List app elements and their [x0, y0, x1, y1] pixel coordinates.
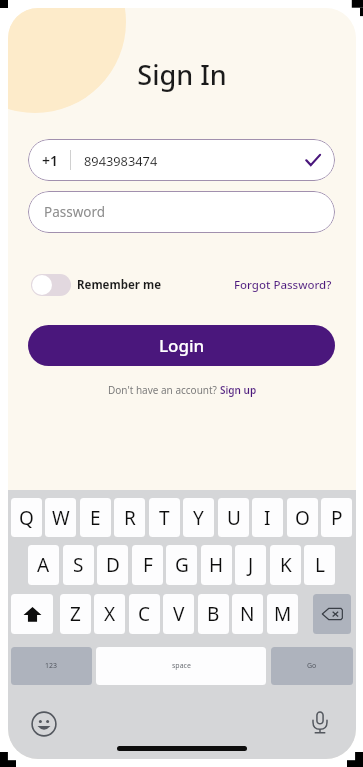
button[interactable]: Password — [28, 191, 335, 233]
staticText: E — [90, 505, 101, 531]
staticText: G — [175, 552, 189, 578]
staticText: N — [240, 601, 255, 627]
staticText: Login — [159, 334, 205, 357]
staticText: X — [104, 601, 116, 627]
button[interactable]: C — [129, 594, 160, 634]
staticText: C — [138, 601, 151, 627]
button[interactable]: N — [232, 594, 263, 634]
staticText: H — [209, 552, 224, 578]
button[interactable]: K — [270, 545, 301, 585]
staticText: Password — [44, 203, 106, 221]
button[interactable]: Go — [271, 647, 353, 685]
button[interactable]: U — [218, 498, 249, 537]
button[interactable]: P — [321, 498, 352, 537]
staticText: Y — [193, 505, 204, 531]
button[interactable]: E — [80, 498, 111, 537]
button[interactable]: M — [267, 594, 298, 634]
staticText: U — [227, 505, 241, 531]
staticText: S — [73, 552, 84, 578]
staticText: M — [274, 601, 292, 627]
button[interactable]: 123 — [11, 647, 92, 685]
staticText: Remember me — [77, 277, 162, 293]
staticText: space — [172, 661, 191, 671]
button[interactable]: I — [252, 498, 283, 537]
staticText: F — [143, 552, 153, 578]
staticText: Q — [19, 505, 34, 531]
staticText: O — [295, 505, 310, 531]
button[interactable]: space — [96, 647, 266, 685]
button[interactable]: F — [132, 545, 163, 585]
button[interactable]: Y — [183, 498, 214, 537]
staticText: +1 — [42, 151, 59, 170]
staticText: V — [173, 601, 185, 627]
button[interactable]: Emoji — [31, 711, 57, 737]
staticText: P — [331, 505, 343, 531]
button[interactable]: T — [149, 498, 180, 537]
staticText: Don't have an account? — [108, 383, 220, 397]
button[interactable]: Sign up — [220, 383, 257, 397]
staticText: A — [37, 552, 50, 578]
button[interactable]: G — [166, 545, 197, 585]
button[interactable]: Forgot Password? — [234, 277, 332, 293]
button[interactable]: B — [198, 594, 229, 634]
button[interactable]: Remember me toggle — [31, 274, 71, 296]
button[interactable]: S — [63, 545, 94, 585]
staticText: Sign In — [8, 56, 356, 93]
button[interactable]: Backspace — [313, 594, 351, 634]
staticText: Forgot Password? — [234, 277, 332, 293]
button[interactable]: O — [287, 498, 318, 537]
button[interactable]: Login — [28, 325, 335, 366]
button[interactable]: H — [201, 545, 232, 585]
button[interactable]: V — [163, 594, 194, 634]
staticText: Z — [70, 601, 81, 627]
staticText: 123 — [45, 661, 58, 671]
button[interactable]: +1 — [28, 139, 335, 181]
staticText: R — [124, 505, 136, 531]
button[interactable]: J — [235, 545, 266, 585]
staticText: Sign up — [220, 383, 257, 397]
staticText: T — [159, 505, 170, 531]
button[interactable]: Z — [60, 594, 91, 634]
button[interactable]: D — [97, 545, 128, 585]
button[interactable]: A — [28, 545, 59, 585]
button[interactable]: W — [45, 498, 76, 537]
staticText: B — [207, 601, 220, 627]
staticText: J — [248, 552, 254, 578]
staticText: Go — [307, 661, 317, 671]
button[interactable]: L — [304, 545, 335, 585]
staticText: W — [52, 505, 70, 531]
staticText: D — [106, 552, 120, 578]
button[interactable]: X — [94, 594, 125, 634]
button[interactable]: R — [114, 498, 145, 537]
button[interactable]: Q — [11, 498, 42, 537]
staticText: I — [264, 505, 271, 531]
staticText: L — [315, 552, 325, 578]
staticText: K — [280, 552, 292, 578]
button[interactable]: Shift — [11, 594, 53, 634]
staticText: 8943983474 — [84, 152, 158, 169]
button[interactable]: Microphone — [306, 709, 334, 737]
